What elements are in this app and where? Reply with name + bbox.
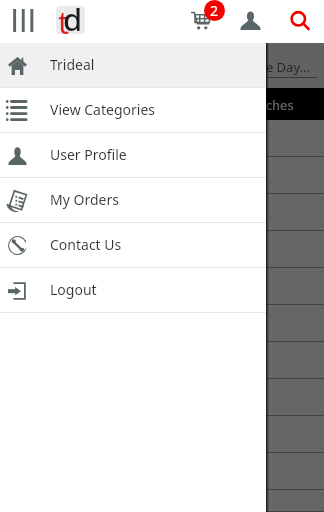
staticText: Contact Us [50, 235, 122, 254]
button[interactable]: User profile [230, 0, 270, 43]
staticText: Trideal [50, 55, 95, 74]
button[interactable]: Open navigation drawer [0, 0, 44, 43]
button[interactable]: Trideal home [56, 6, 85, 34]
staticText: Watches [242, 96, 294, 114]
button[interactable]: Logout [0, 268, 266, 313]
button[interactable]: Search [282, 0, 322, 43]
staticText: 2 [210, 1, 219, 20]
button[interactable]: Cart [185, 0, 225, 43]
button[interactable]: My Orders [0, 178, 266, 223]
staticText: Search Products, Brands and Deal of the … [28, 58, 310, 76]
staticText: Logout [50, 280, 97, 299]
button[interactable]: Contact Us [0, 223, 266, 268]
staticText: My Orders [50, 190, 119, 209]
staticText: User Profile [50, 145, 127, 164]
staticText: View Categories [50, 100, 155, 119]
button[interactable]: Trideal [0, 43, 266, 88]
staticText: t [58, 1, 70, 43]
button[interactable]: User Profile [0, 133, 266, 178]
button[interactable]: View Categories [0, 88, 266, 133]
staticText: d [63, 0, 83, 40]
